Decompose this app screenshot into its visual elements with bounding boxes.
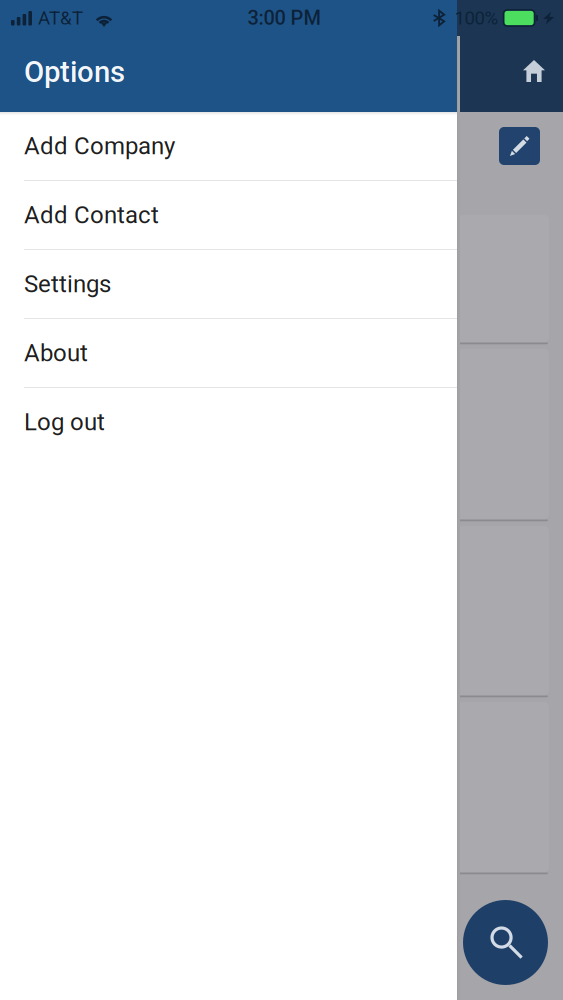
staticText: 3:00 PM [247, 6, 320, 30]
button[interactable]: Home [512, 49, 556, 93]
button[interactable]: About [0, 319, 457, 388]
button[interactable]: Search [463, 900, 548, 985]
button[interactable]: Add Company [0, 112, 457, 181]
staticText: Settings [24, 270, 111, 298]
button[interactable]: Edit [499, 127, 540, 165]
button[interactable]: Log out [0, 388, 457, 457]
button[interactable]: Add Contact [0, 181, 457, 250]
button[interactable]: Settings [0, 250, 457, 319]
staticText: About [24, 339, 88, 367]
staticText: Add Company [24, 132, 175, 160]
staticText: 100% [455, 7, 499, 29]
staticText: AT&T [38, 7, 83, 29]
staticText: Log out [24, 408, 105, 436]
staticText: Add Contact [24, 201, 159, 229]
staticText: Options [24, 55, 125, 89]
